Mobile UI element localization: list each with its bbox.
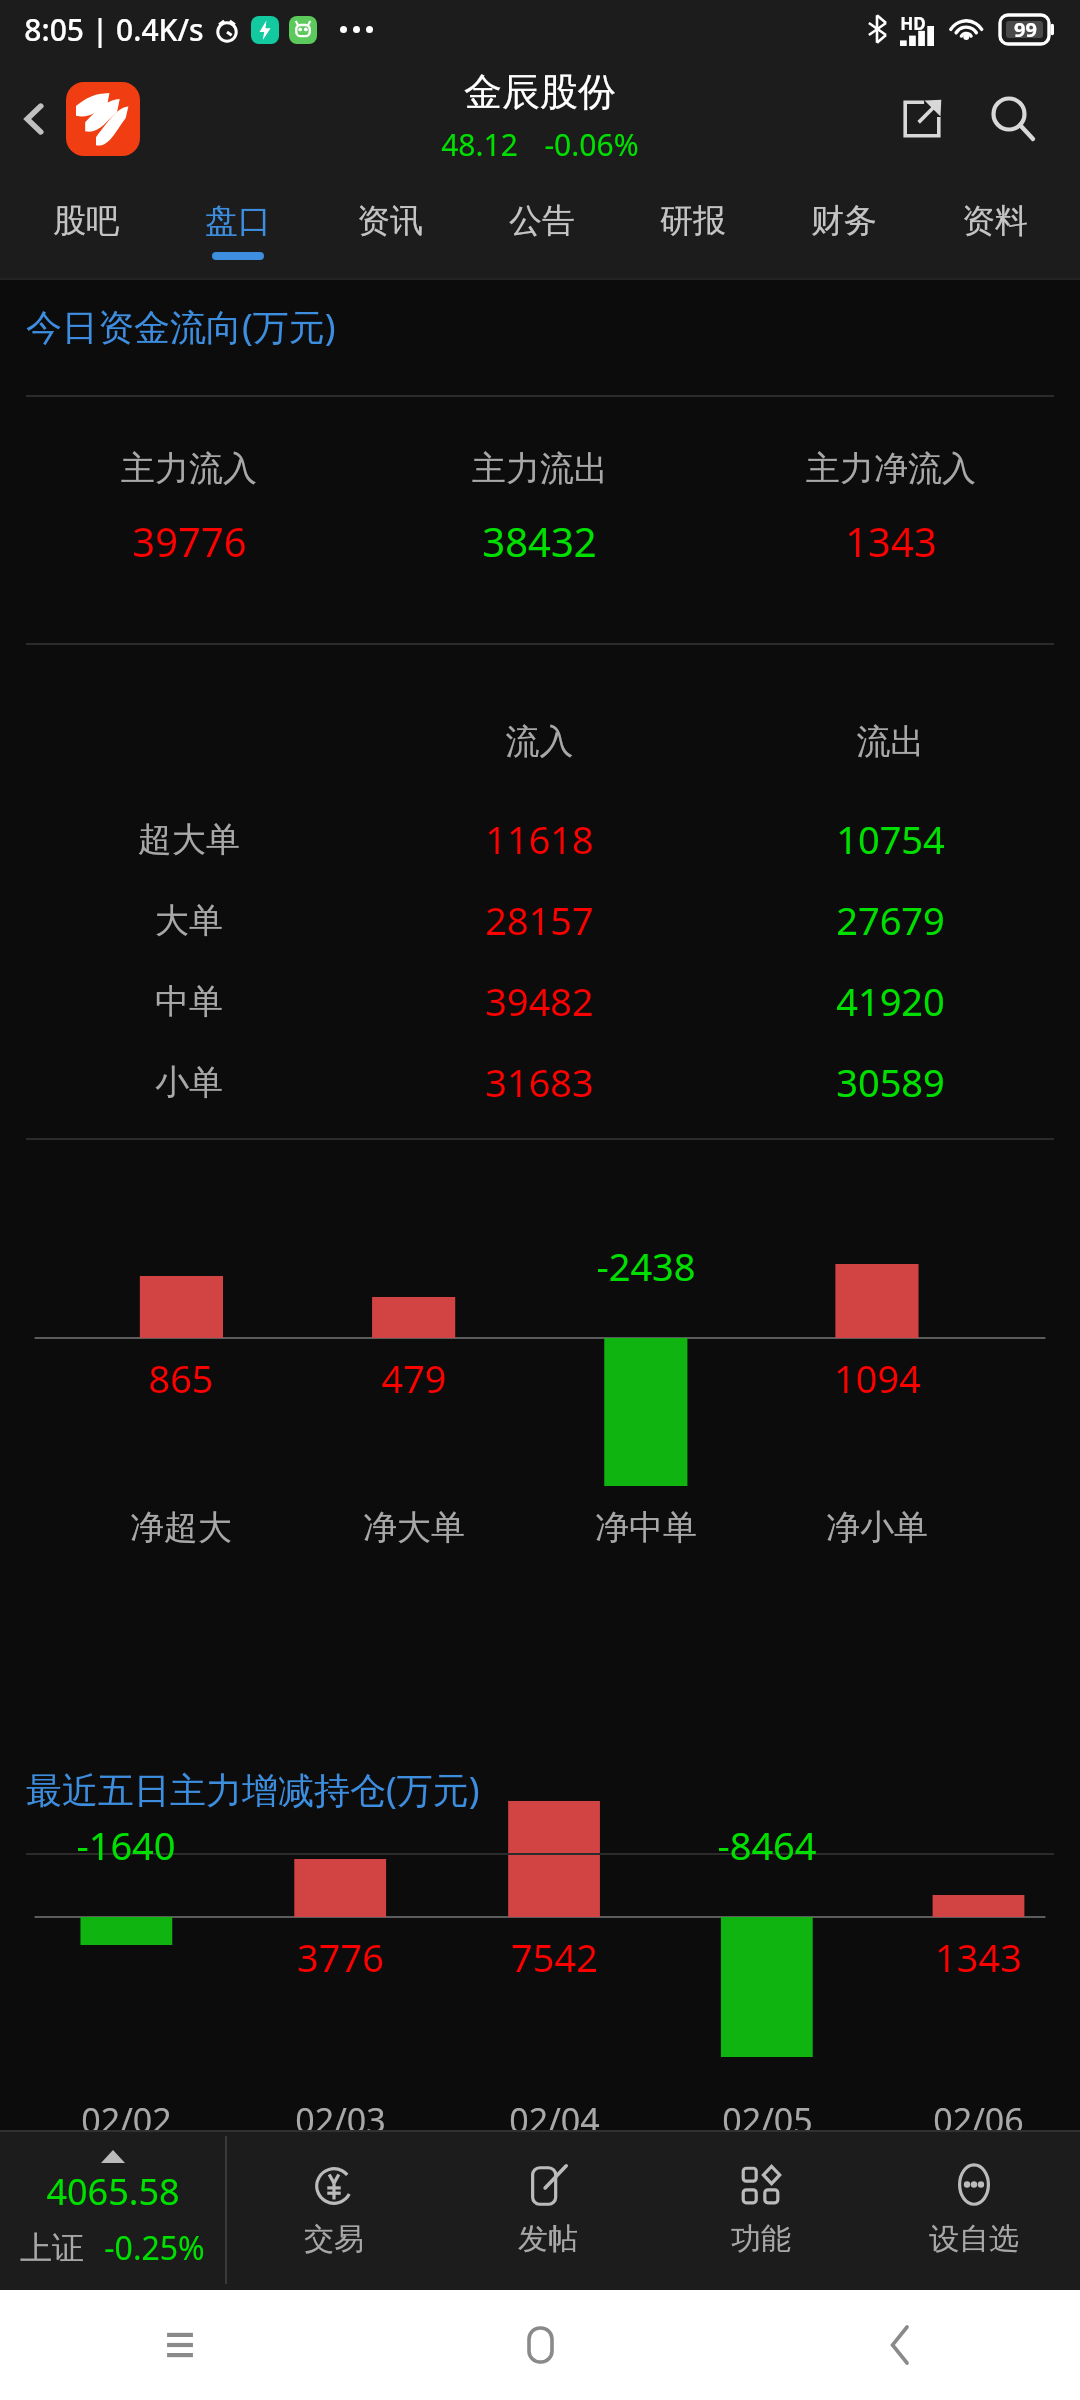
staticText: 27679 — [715, 894, 1066, 946]
staticText: 28157 — [364, 894, 715, 946]
staticText: 865 — [148, 1352, 214, 1404]
staticText: 财务 — [811, 200, 877, 242]
staticText: 主力流入 — [121, 447, 257, 490]
button[interactable]: Home — [360, 2290, 720, 2400]
staticText: 1094 — [834, 1352, 921, 1404]
staticText: 大单 — [14, 899, 364, 942]
staticText: 38432 — [482, 514, 597, 568]
staticText: 48.12 — [441, 124, 518, 165]
staticText: 主力流出 — [472, 447, 608, 490]
staticText: 4065.58 — [46, 2167, 180, 2216]
staticText: 10754 — [715, 813, 1066, 865]
staticText: 02/06 — [933, 2097, 1024, 2143]
staticText: -1640 — [76, 1819, 176, 1871]
staticText: 设自选 — [929, 2220, 1019, 2258]
button[interactable]: App home — [66, 82, 140, 156]
button[interactable]: 4065.58 — [0, 2130, 225, 2290]
button[interactable]: 设自选 — [867, 2130, 1080, 2290]
staticText: 小单 — [14, 1061, 364, 1104]
staticText: 超大单 — [14, 818, 364, 861]
staticText: 研报 — [660, 200, 726, 242]
button[interactable]: Back — [720, 2290, 1080, 2400]
staticText: 1343 — [935, 1931, 1022, 1983]
staticText: 479 — [381, 1352, 447, 1404]
staticText: 股吧 — [53, 200, 119, 242]
staticText: 盘口 — [205, 200, 271, 242]
staticText: -8464 — [717, 1819, 817, 1871]
button[interactable]: 功能 — [654, 2130, 867, 2290]
button[interactable]: 资讯 — [314, 180, 466, 280]
staticText: 净中单 — [595, 1506, 697, 1549]
staticText: 今日资金流向(万元) — [26, 302, 336, 351]
staticText: 净小单 — [826, 1506, 928, 1549]
button[interactable]: 发帖 — [441, 2130, 654, 2290]
button[interactable]: Recents — [0, 2290, 360, 2400]
staticText: 发帖 — [518, 2220, 578, 2258]
staticText: 金辰股份 — [464, 68, 616, 116]
button[interactable]: Back — [0, 58, 68, 180]
staticText: 11618 — [364, 813, 715, 865]
button[interactable]: 研报 — [617, 180, 768, 280]
staticText: 30589 — [715, 1056, 1066, 1108]
button[interactable]: 股吧 — [10, 180, 162, 280]
staticText: 流出 — [715, 720, 1066, 763]
button[interactable]: 交易 — [227, 2130, 441, 2290]
staticText: 3776 — [297, 1931, 384, 1983]
button[interactable]: 盘口 — [162, 180, 314, 280]
staticText: 99 — [1014, 16, 1037, 43]
staticText: 39776 — [132, 514, 247, 568]
staticText: HD — [900, 12, 926, 35]
button[interactable]: Share — [878, 75, 966, 163]
staticText: 02/02 — [81, 2097, 172, 2143]
staticText: 02/05 — [722, 2097, 813, 2143]
staticText: 中单 — [14, 980, 364, 1023]
staticText: 上证 — [20, 2228, 84, 2268]
staticText: 资讯 — [357, 200, 423, 242]
staticText: 净大单 — [363, 1506, 465, 1549]
staticText: 功能 — [731, 2220, 791, 2258]
button[interactable]: 财务 — [768, 180, 919, 280]
staticText: 8:05 | 0.4K/s — [24, 9, 204, 50]
staticText: 公告 — [509, 200, 575, 242]
staticText: -0.06% — [544, 124, 639, 165]
staticText: -2438 — [596, 1240, 696, 1292]
staticText: 最近五日主力增减持仓(万元) — [26, 1765, 480, 1814]
button[interactable]: Search — [966, 72, 1060, 166]
staticText: 7542 — [511, 1931, 598, 1983]
staticText: 39482 — [364, 975, 715, 1027]
staticText: 净超大 — [130, 1506, 232, 1549]
staticText: 资料 — [962, 200, 1028, 242]
staticText: 02/03 — [295, 2097, 386, 2143]
staticText: -0.25% — [104, 2226, 205, 2270]
staticText: 流入 — [364, 720, 715, 763]
staticText: 31683 — [364, 1056, 715, 1108]
staticText: 02/04 — [509, 2097, 600, 2143]
button[interactable]: 公告 — [466, 180, 617, 280]
staticText: 交易 — [304, 2220, 364, 2258]
staticText: 主力净流入 — [806, 447, 976, 490]
staticText: 41920 — [715, 975, 1066, 1027]
button[interactable]: 资料 — [919, 180, 1070, 280]
staticText: 1343 — [845, 514, 937, 568]
